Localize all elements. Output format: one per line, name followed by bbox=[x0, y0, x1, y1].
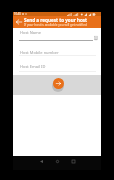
staticText: Send a request to your host bbox=[24, 17, 88, 23]
button[interactable]: Recent apps bbox=[68, 156, 78, 166]
button[interactable]: Pick from contacts bbox=[92, 34, 99, 41]
button[interactable]: Back bbox=[36, 156, 46, 166]
staticText: Host Mobile number bbox=[20, 50, 59, 55]
button[interactable]: Host Mobile number bbox=[20, 48, 94, 56]
button[interactable]: Host Email ID bbox=[20, 62, 94, 70]
staticText: 10:45 bbox=[14, 12, 21, 16]
button[interactable]: Host Name bbox=[20, 28, 94, 36]
button[interactable]: Back bbox=[13, 16, 24, 28]
staticText: Host Name bbox=[20, 30, 42, 35]
button[interactable]: Home bbox=[52, 156, 62, 166]
staticText: If your host is available you will get n… bbox=[24, 23, 87, 27]
staticText: Host Email ID bbox=[20, 64, 46, 69]
button[interactable]: Send request bbox=[53, 78, 64, 89]
